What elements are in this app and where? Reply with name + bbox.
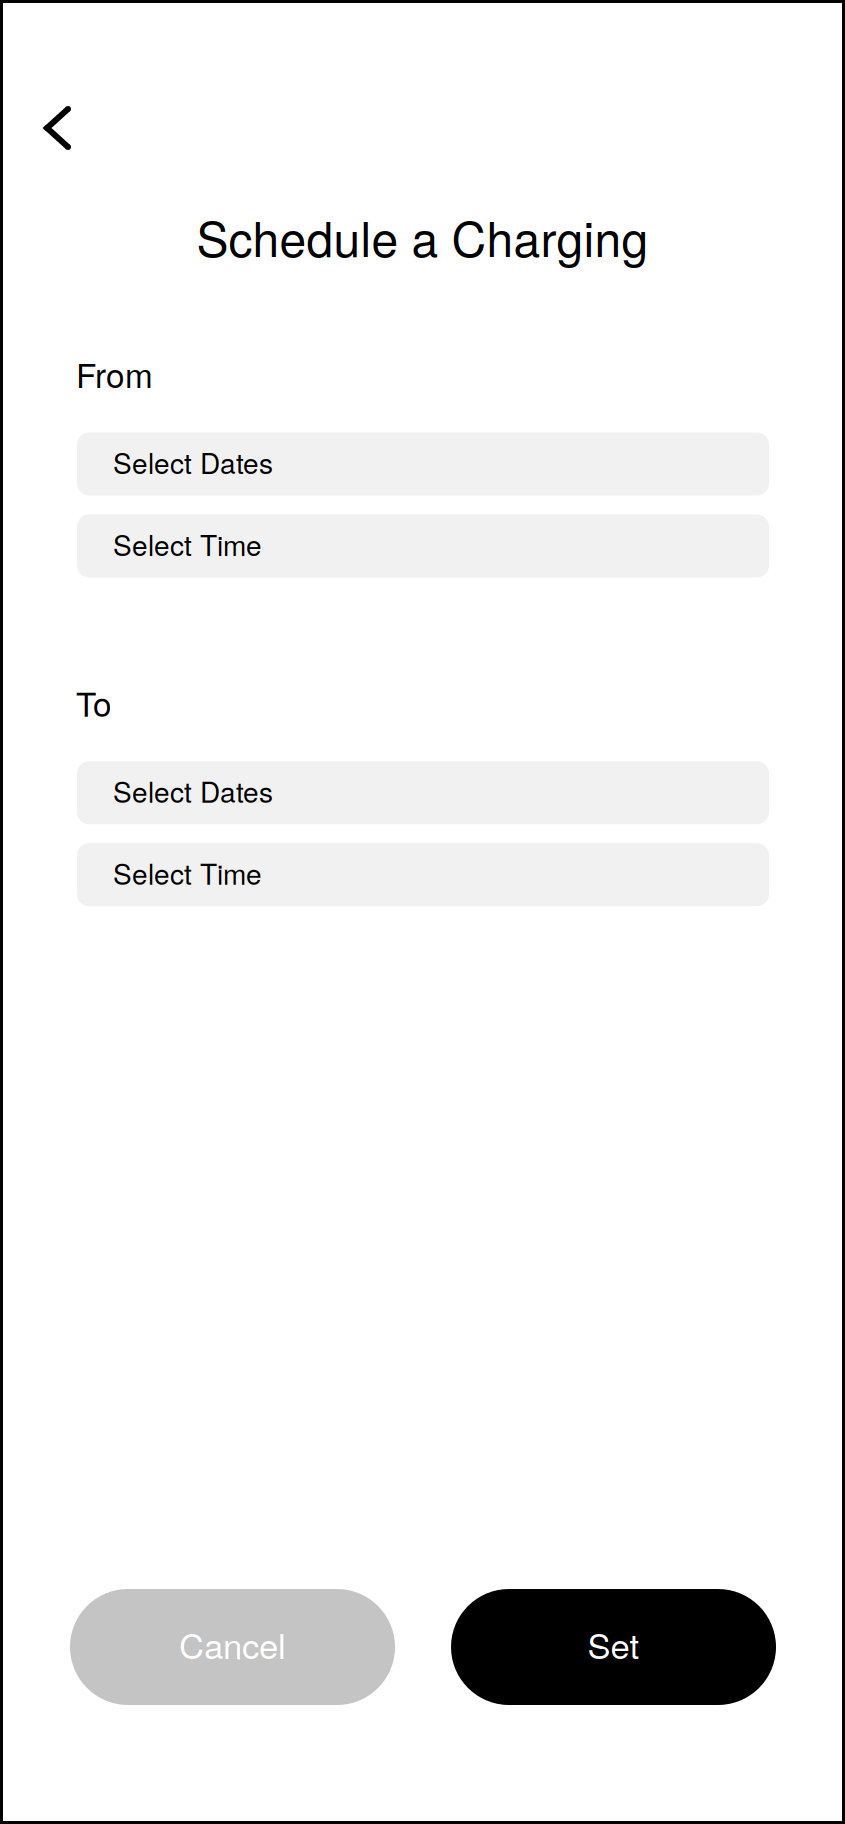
button[interactable]: Back — [44, 106, 71, 150]
button[interactable]: Select Time — [77, 514, 769, 577]
staticText: To — [76, 678, 112, 726]
button[interactable]: Select Time — [77, 843, 769, 906]
staticText: Select Time — [113, 853, 262, 893]
staticText: Cancel — [179, 1619, 286, 1669]
button[interactable]: Set — [451, 1589, 776, 1705]
staticText: Select Dates — [113, 442, 273, 482]
button[interactable]: Select Dates — [77, 761, 769, 824]
staticText: Set — [587, 1619, 639, 1669]
staticText: Schedule a Charging — [196, 202, 648, 271]
staticText: From — [76, 350, 153, 397]
button[interactable]: Cancel — [70, 1589, 395, 1705]
staticText: Select Time — [113, 524, 262, 564]
staticText: Select Dates — [113, 771, 273, 811]
button[interactable]: Select Dates — [77, 432, 769, 495]
